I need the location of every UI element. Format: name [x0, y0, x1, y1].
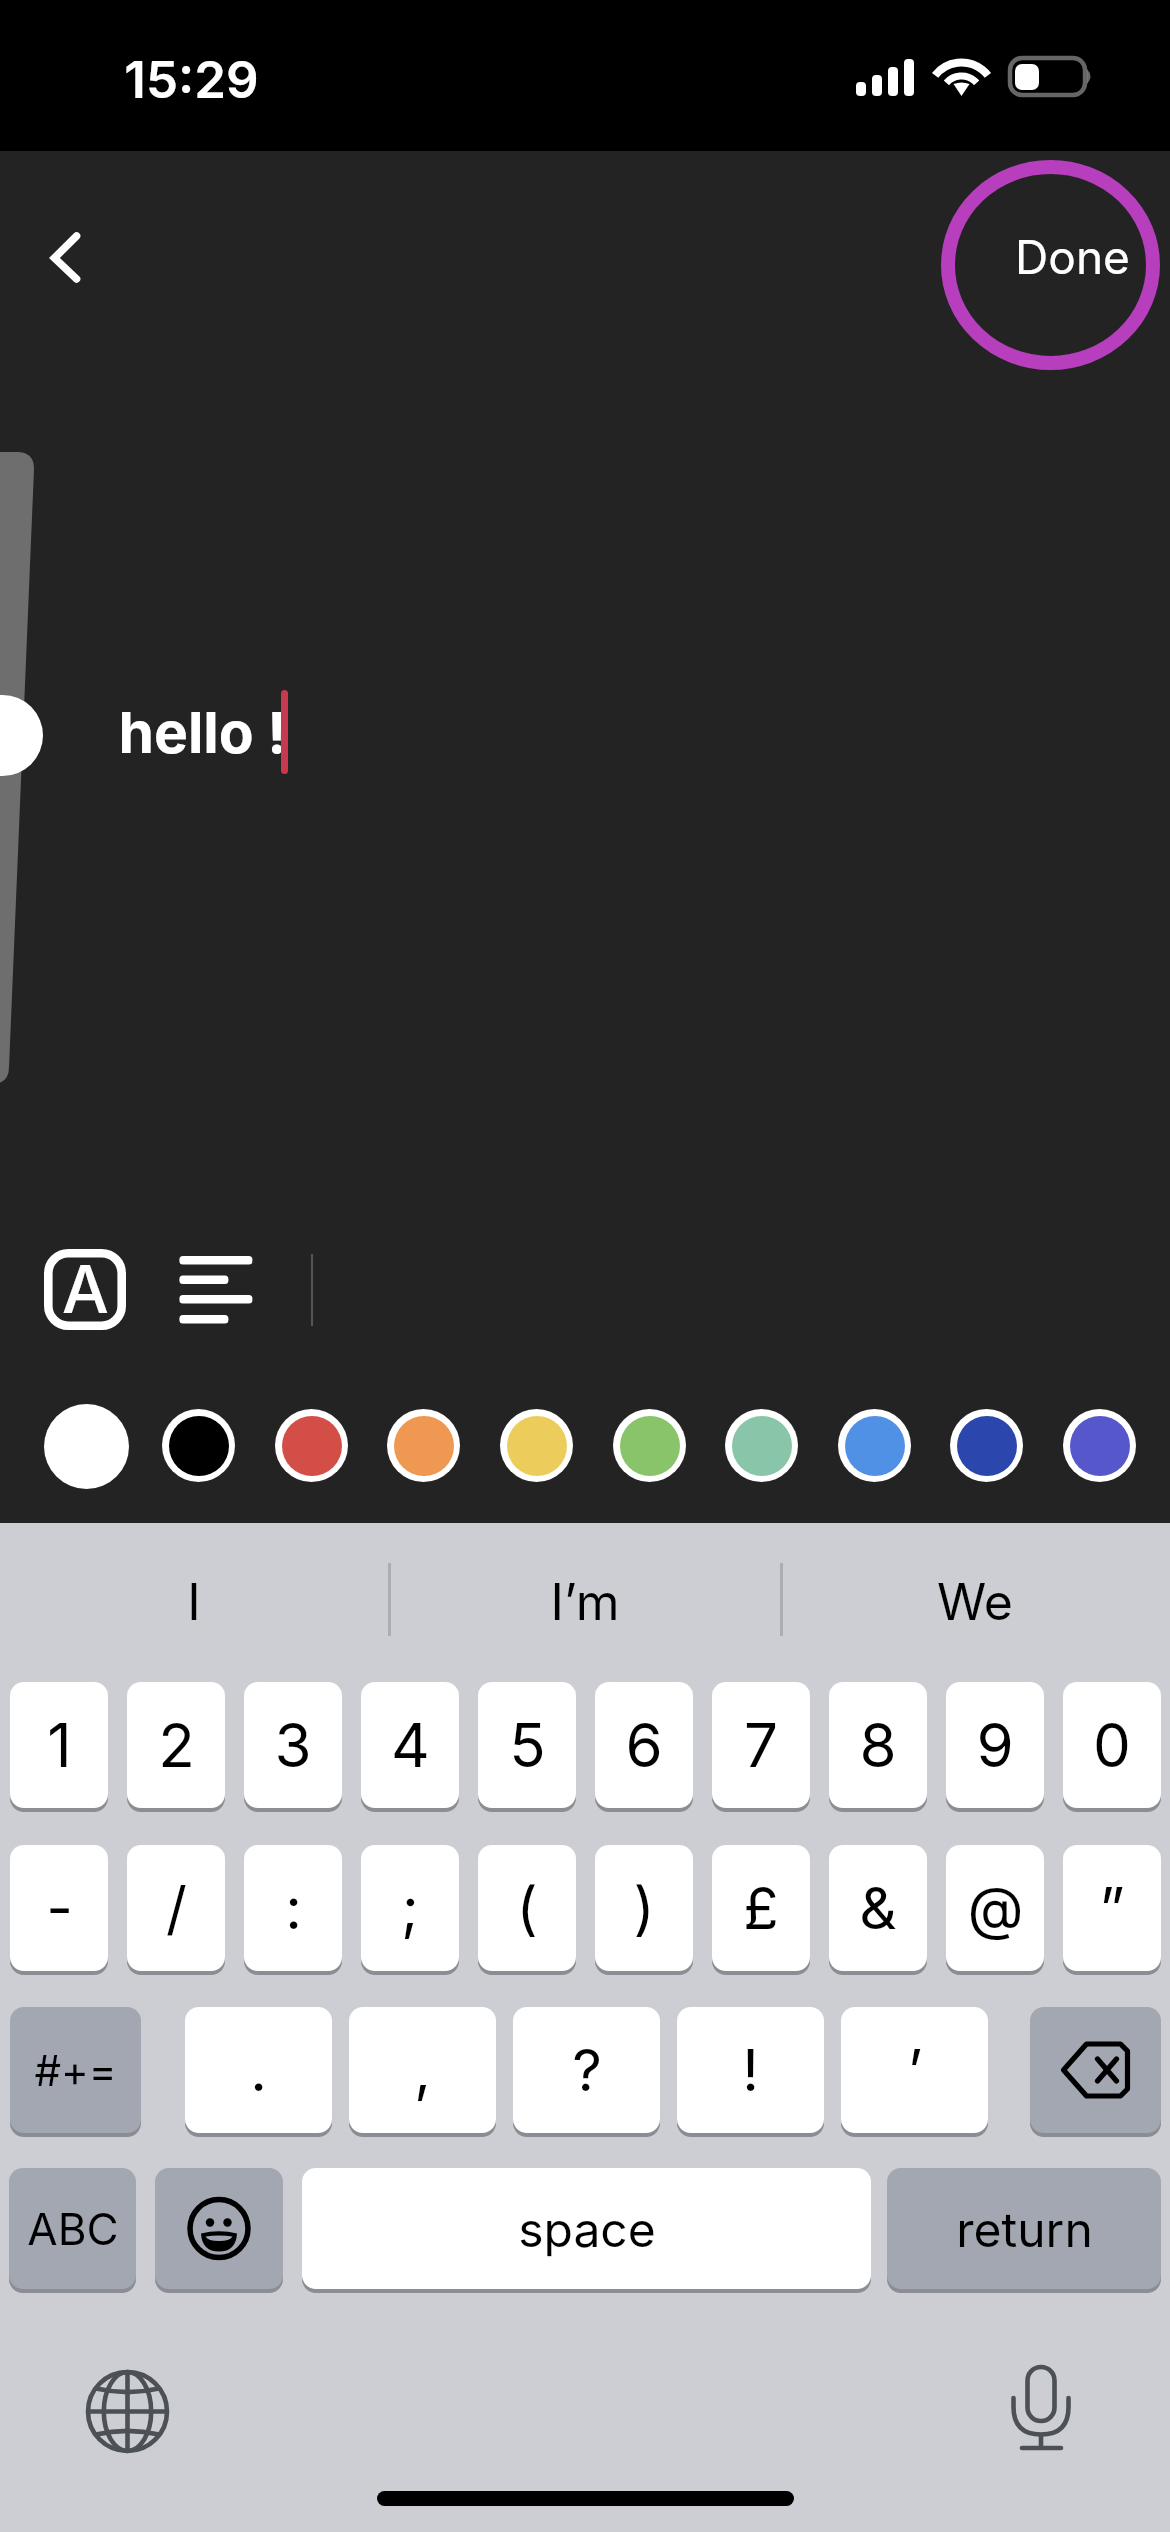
button[interactable]: ! — [677, 2007, 824, 2133]
button[interactable]: Colour 6 — [613, 1409, 686, 1482]
staticText: - — [46, 1873, 73, 1943]
button[interactable]: Back — [10, 200, 130, 320]
staticText: ! — [742, 2035, 759, 2105]
button[interactable]: Colour 9 — [950, 1409, 1023, 1482]
staticText: 6 — [625, 1709, 663, 1782]
staticText: Done — [1015, 229, 1130, 285]
staticText: 4 — [391, 1709, 430, 1782]
staticText: ’ — [907, 2035, 923, 2105]
staticText: hello ! — [118, 698, 287, 767]
button[interactable]: Done — [997, 182, 1147, 332]
button[interactable]: & — [829, 1845, 927, 1971]
button[interactable]: Colour 7 — [725, 1409, 798, 1482]
staticText: . — [250, 2035, 267, 2105]
button[interactable]: return — [887, 2168, 1161, 2289]
staticText: 3 — [274, 1709, 312, 1782]
button[interactable]: 9 — [946, 1682, 1044, 1808]
button[interactable]: 0 — [1063, 1682, 1161, 1808]
button[interactable]: ’ — [841, 2007, 988, 2133]
button[interactable]: Colour 8 — [838, 1409, 911, 1482]
button[interactable]: ) — [595, 1845, 693, 1971]
staticText: 0 — [1093, 1709, 1131, 1782]
button[interactable]: - — [10, 1845, 108, 1971]
button[interactable]: space — [302, 2168, 871, 2289]
staticText: 2 — [158, 1709, 195, 1782]
button[interactable]: 4 — [361, 1682, 459, 1808]
staticText: ” — [1099, 1873, 1125, 1943]
staticText: ? — [572, 2035, 602, 2105]
button[interactable]: 8 — [829, 1682, 927, 1808]
button[interactable]: . — [185, 2007, 332, 2133]
staticText: : — [285, 1873, 302, 1943]
staticText: 8 — [859, 1709, 897, 1782]
button[interactable]: Text style — [44, 1249, 126, 1330]
button[interactable]: Emoji — [155, 2168, 283, 2289]
button[interactable]: I — [34, 1541, 354, 1663]
button[interactable]: £ — [712, 1845, 810, 1971]
staticText: space — [518, 2200, 656, 2258]
staticText: A — [62, 1249, 109, 1329]
staticText: £ — [743, 1873, 779, 1943]
staticText: 9 — [976, 1709, 1014, 1782]
staticText: 1 — [47, 1709, 72, 1782]
button[interactable]: ” — [1063, 1845, 1161, 1971]
staticText: , — [414, 2035, 431, 2105]
button[interactable]: : — [244, 1845, 342, 1971]
button[interactable]: Colour 10 — [1063, 1409, 1136, 1482]
button[interactable]: 5 — [478, 1682, 576, 1808]
button[interactable]: Alignment — [172, 1248, 268, 1332]
staticText: I’m — [550, 1572, 620, 1632]
staticText: 5 — [509, 1709, 546, 1782]
button[interactable]: Colour 4 — [387, 1409, 460, 1482]
button[interactable]: , — [349, 2007, 496, 2133]
button[interactable]: ABC — [9, 2168, 136, 2289]
staticText: & — [859, 1873, 897, 1943]
staticText: 15:29 — [124, 49, 259, 111]
staticText: #+= — [34, 2045, 117, 2096]
staticText: / — [166, 1873, 187, 1943]
button[interactable]: We — [815, 1541, 1135, 1663]
button[interactable]: 6 — [595, 1682, 693, 1808]
button[interactable]: 1 — [10, 1682, 108, 1808]
button[interactable]: Backspace — [1030, 2007, 1161, 2133]
button[interactable]: #+= — [10, 2007, 141, 2133]
button[interactable]: Colour 5 — [500, 1409, 573, 1482]
staticText: I — [187, 1572, 201, 1632]
button[interactable]: Switch keyboard — [79, 2363, 176, 2460]
button[interactable]: 2 — [127, 1682, 225, 1808]
staticText: ; — [401, 1873, 419, 1943]
staticText: ABC — [27, 2202, 119, 2255]
staticText: We — [937, 1572, 1013, 1632]
button[interactable]: I’m — [425, 1541, 745, 1663]
staticText: 7 — [744, 1709, 778, 1782]
staticText: ( — [516, 1873, 538, 1943]
button[interactable]: ? — [513, 2007, 660, 2133]
button[interactable]: Colour 2 — [162, 1409, 235, 1482]
button[interactable]: / — [127, 1845, 225, 1971]
button[interactable]: Colour 3 — [275, 1409, 348, 1482]
button[interactable]: 7 — [712, 1682, 810, 1808]
staticText: ) — [633, 1873, 655, 1943]
button[interactable]: ; — [361, 1845, 459, 1971]
staticText: @ — [967, 1873, 1024, 1943]
button[interactable]: ( — [478, 1845, 576, 1971]
button[interactable]: Dictate — [993, 2364, 1089, 2460]
button[interactable]: @ — [946, 1845, 1044, 1971]
button[interactable]: 3 — [244, 1682, 342, 1808]
staticText: return — [956, 2200, 1093, 2258]
button[interactable]: Colour 1 — [44, 1404, 129, 1489]
